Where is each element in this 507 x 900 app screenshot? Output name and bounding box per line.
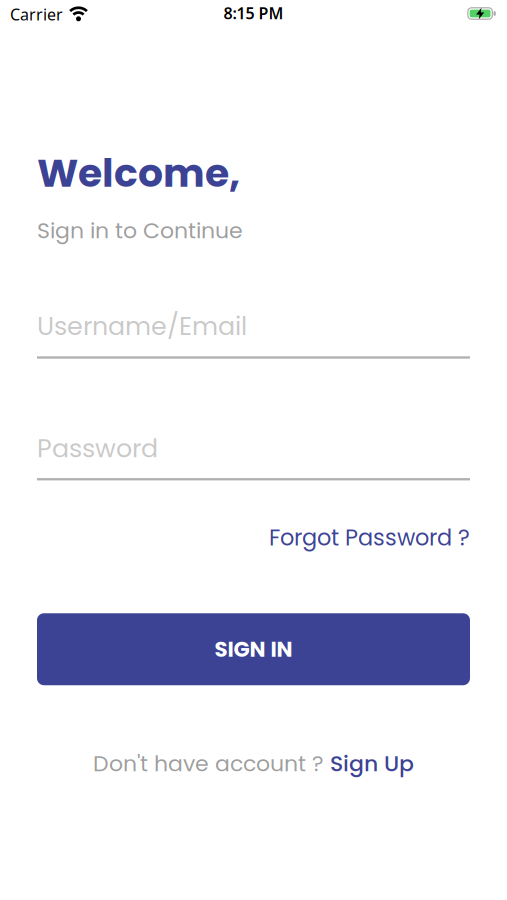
staticText: Carrier <box>10 4 63 25</box>
staticText: Don't have account ? <box>93 748 330 779</box>
staticText: Forgot Password ? <box>269 522 470 553</box>
staticText: Sign in to Continue <box>37 215 243 246</box>
button[interactable]: Password <box>37 431 470 480</box>
staticText: SIGN IN <box>214 634 292 664</box>
button[interactable]: Username/Email <box>37 308 470 359</box>
staticText: Password <box>37 431 158 466</box>
button[interactable]: Forgot Password ? <box>269 522 470 553</box>
button[interactable]: Don't have account ? <box>93 748 414 779</box>
staticText: Sign Up <box>330 748 414 779</box>
staticText: 8:15 PM <box>223 2 283 24</box>
staticText: Username/Email <box>37 308 247 344</box>
staticText: Welcome, <box>37 145 240 201</box>
button[interactable]: SIGN IN <box>37 613 470 685</box>
